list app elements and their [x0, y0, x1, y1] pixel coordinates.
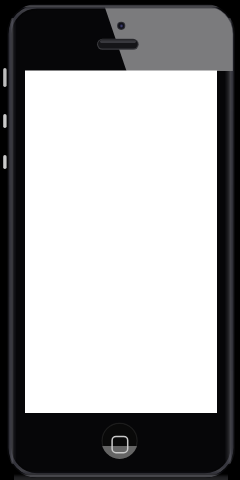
- other: Smartphone device illustration: [0, 0, 240, 480]
